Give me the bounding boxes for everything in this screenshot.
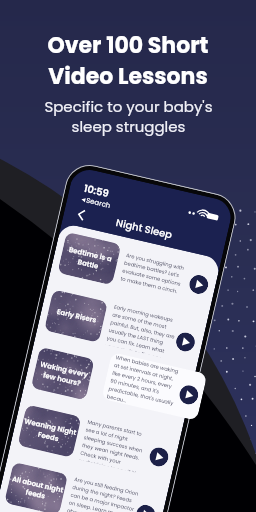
button[interactable]: Play lesson	[187, 273, 210, 296]
staticText: Many parents start to see a lot of night…	[79, 418, 153, 474]
staticText: Specific to your baby's sleep struggles	[44, 96, 213, 138]
button[interactable]: Early Risers	[44, 289, 200, 364]
staticText: Early morning wakeups are some of the mo…	[105, 303, 179, 359]
staticText: Early Risers	[55, 307, 98, 326]
button[interactable]: Weaning Night Feeds	[17, 404, 173, 479]
staticText: All about night feeds	[9, 474, 64, 504]
staticText: Weaning Night Feeds	[21, 416, 78, 447]
staticText: Search	[85, 196, 112, 211]
staticText: Night Sleep	[115, 215, 174, 242]
staticText: Bedtime is a Battle	[66, 245, 113, 273]
staticText: Over 100 Short	[47, 30, 209, 61]
button[interactable]: When babies are waking at set intervals …	[101, 352, 207, 421]
staticText: Are you struggling with bedtime battles?…	[120, 252, 191, 296]
button[interactable]: Waking every few hours?	[31, 347, 186, 422]
button[interactable]: All about night feeds	[4, 462, 160, 512]
button[interactable]: Play lesson	[174, 330, 197, 353]
button[interactable]: Play lesson	[148, 445, 170, 468]
staticText: Waking every few hours?	[37, 359, 89, 389]
button[interactable]: Bedtime is a Battle	[57, 232, 213, 307]
staticText: 10:59	[82, 181, 111, 200]
button[interactable]: Back	[72, 205, 90, 223]
staticText: Are you still feeding Orion during the n…	[66, 476, 139, 512]
button[interactable]: Play lesson	[177, 383, 200, 406]
staticText: When babies are waking at set intervals …	[106, 354, 183, 414]
staticText: Video Lessons	[48, 61, 208, 92]
button[interactable]: Play lesson	[134, 503, 157, 512]
